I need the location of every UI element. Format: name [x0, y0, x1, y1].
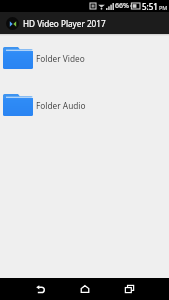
button[interactable]: Folder Audio: [0, 81, 169, 128]
button[interactable]: Back: [18, 278, 62, 300]
staticText: HD Video Player 2017: [23, 18, 106, 29]
staticText: Folder Video: [36, 53, 85, 64]
button[interactable]: Home: [63, 278, 107, 300]
staticText: 5:51: [142, 1, 158, 12]
button[interactable]: Recent apps: [107, 278, 151, 300]
staticText: PM: [159, 4, 168, 11]
staticText: Folder Audio: [36, 100, 86, 111]
staticText: 66%: [115, 1, 129, 11]
button[interactable]: Folder Video: [0, 34, 169, 81]
